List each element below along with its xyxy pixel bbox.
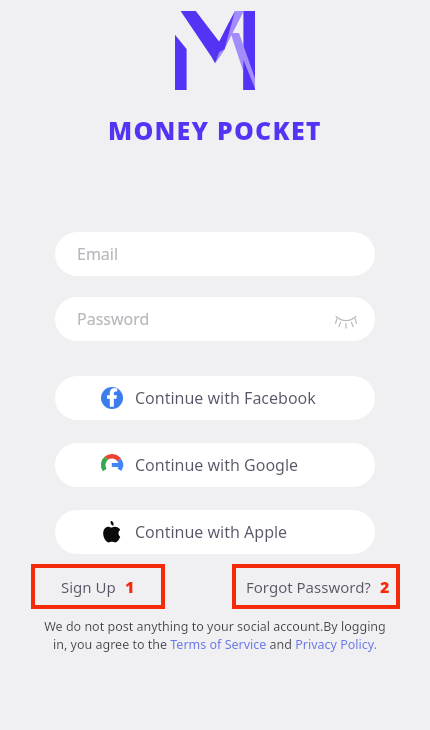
staticText: Continue with Facebook xyxy=(135,387,316,409)
staticText: Continue with Google xyxy=(135,454,299,476)
staticText: 1 xyxy=(125,576,135,598)
staticText: 2 xyxy=(380,576,386,598)
staticText: Forgot Password? xyxy=(246,577,371,597)
button[interactable]: Continue with Apple xyxy=(55,510,375,554)
staticText: Email xyxy=(77,243,119,265)
staticText: Continue with Apple xyxy=(135,521,288,543)
staticText: Password xyxy=(77,308,150,330)
button[interactable]: Password xyxy=(55,297,375,341)
button[interactable]: Sign Up xyxy=(35,568,161,605)
button[interactable]: Continue with Facebook xyxy=(55,376,375,420)
staticText: MONEY POCKET xyxy=(108,113,322,147)
button[interactable]: Continue with Google xyxy=(55,443,375,487)
staticText: Sign Up xyxy=(61,577,116,597)
button[interactable]: Forgot Password? xyxy=(236,568,396,605)
button[interactable]: We do not post anything to your social a… xyxy=(44,618,386,653)
button[interactable]: Email xyxy=(55,232,375,276)
button[interactable]: Show password xyxy=(333,306,359,332)
